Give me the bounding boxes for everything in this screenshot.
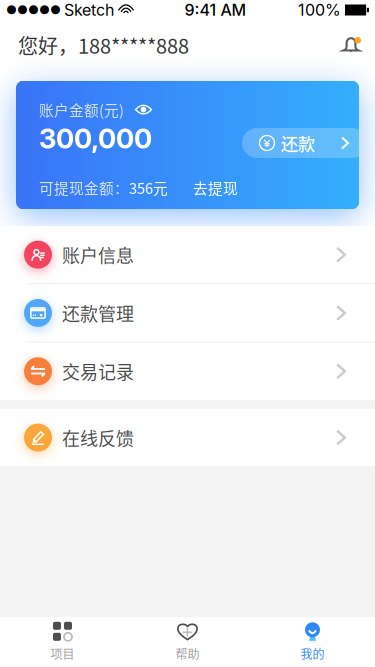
staticText: ●●●●●	[6, 3, 61, 17]
staticText: 9:41 AM	[184, 0, 246, 20]
staticText: 账户金额(元)	[39, 99, 124, 120]
staticText: 交易记录	[62, 358, 134, 384]
staticText: 还款管理	[62, 300, 134, 326]
staticText: 可提现金额：	[39, 177, 129, 198]
staticText: 项目	[50, 645, 74, 662]
button[interactable]: 我的	[250, 617, 375, 667]
staticText: 100%	[298, 0, 341, 20]
button[interactable]: 通知	[341, 34, 361, 56]
staticText: 在线反馈	[62, 424, 134, 451]
button[interactable]: 帮助	[125, 617, 250, 667]
staticText: 356元	[129, 177, 168, 198]
staticText: 300,000	[39, 122, 152, 155]
staticText: 我的	[300, 645, 324, 662]
button[interactable]: 账户信息	[0, 226, 375, 283]
staticText: 帮助	[175, 645, 199, 662]
button[interactable]: 项目	[0, 617, 125, 667]
staticText: Sketch	[64, 0, 114, 20]
staticText: 去提现	[193, 177, 238, 198]
button[interactable]: 还款管理	[0, 284, 375, 342]
button[interactable]: 交易记录	[0, 343, 375, 400]
button[interactable]: 还款	[242, 128, 367, 158]
button[interactable]: 在线反馈	[0, 409, 375, 466]
staticText: 您好，188*****888	[18, 30, 189, 59]
staticText: 还款	[281, 130, 315, 156]
staticText: 账户信息	[62, 242, 134, 268]
